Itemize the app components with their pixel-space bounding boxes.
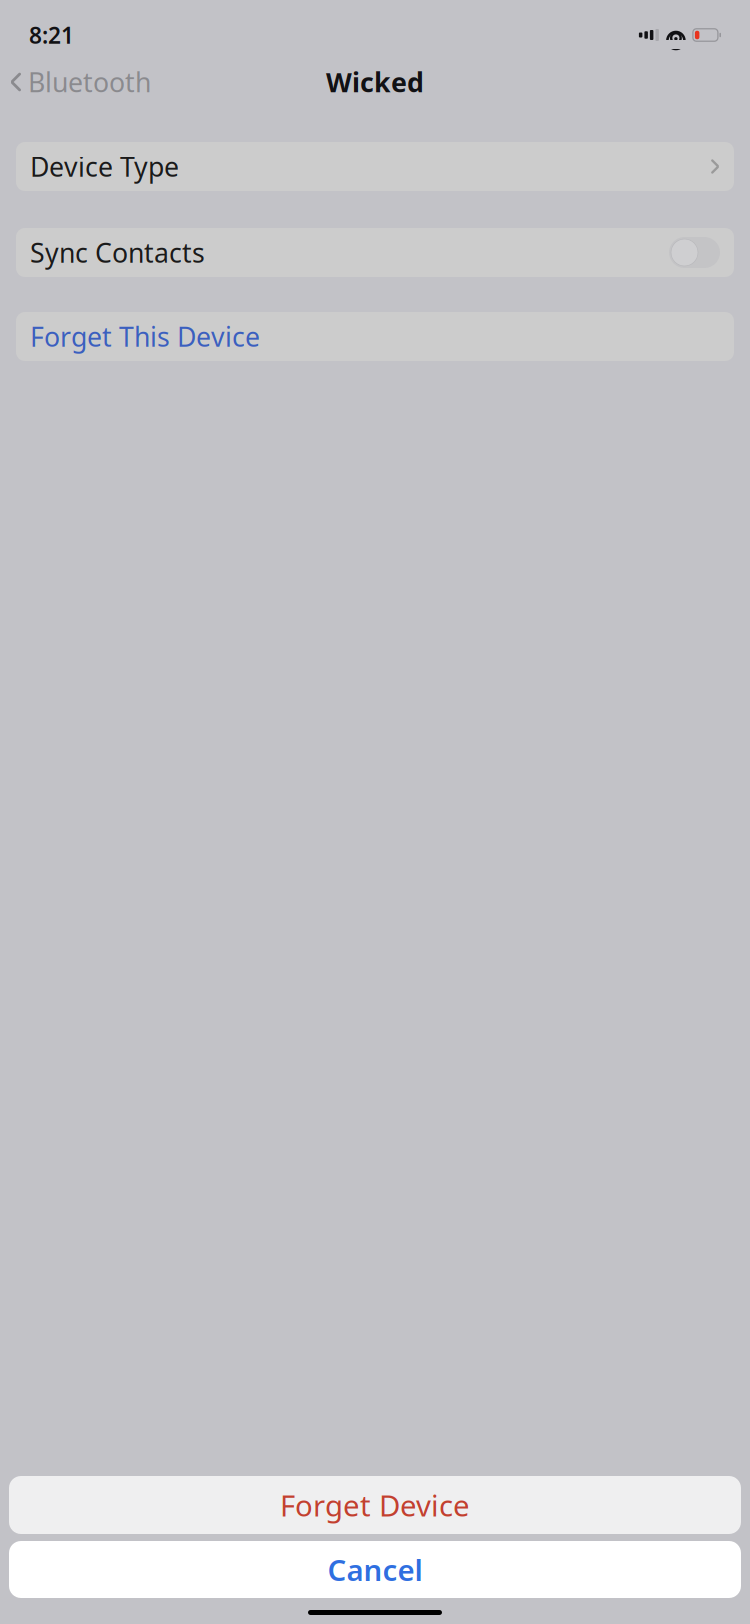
- button[interactable]: Sync Contacts: [16, 228, 734, 277]
- staticText: Forget Device: [280, 1485, 470, 1524]
- staticText: Wicked: [326, 64, 424, 100]
- button[interactable]: Forget Device: [9, 1476, 741, 1534]
- staticText: Forget This Device: [30, 319, 260, 354]
- staticText: Cancel: [327, 1550, 422, 1589]
- staticText: Device Type: [30, 149, 179, 184]
- staticText: Sync Contacts: [30, 235, 205, 270]
- button[interactable]: Cancel: [9, 1541, 741, 1598]
- staticText: Bluetooth: [28, 64, 151, 100]
- button[interactable]: Device Type: [16, 142, 734, 191]
- button[interactable]: Forget This Device: [16, 312, 734, 361]
- button[interactable]: Bluetooth: [10, 58, 151, 106]
- staticText: 8:21: [29, 20, 74, 50]
